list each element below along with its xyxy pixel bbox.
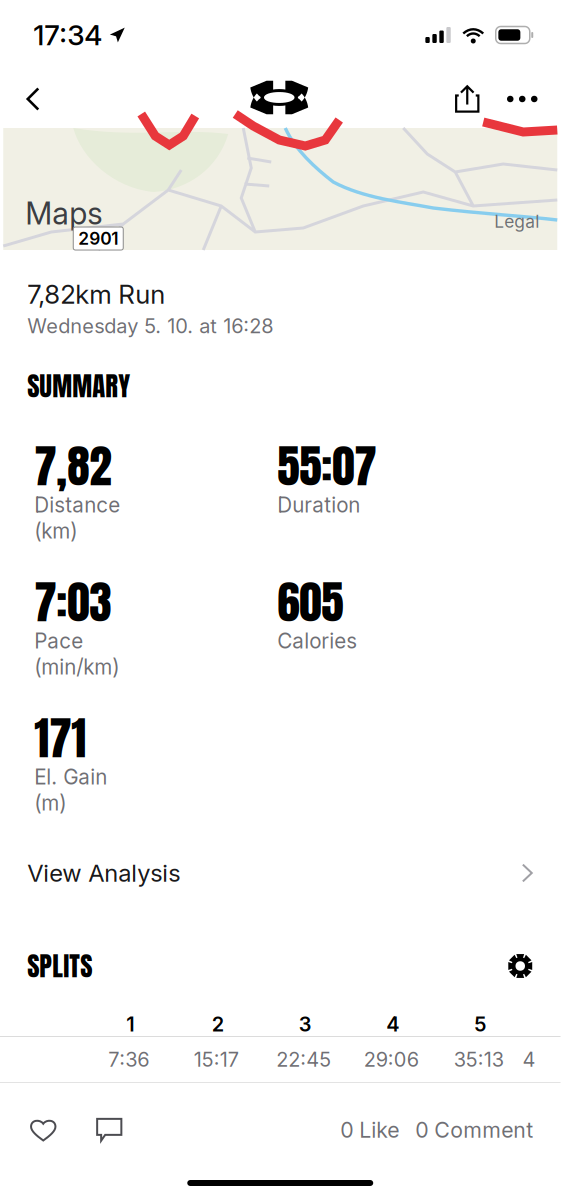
staticText: View Analysis xyxy=(27,858,180,887)
staticText: 29:06 xyxy=(364,1047,419,1072)
staticText: 4 xyxy=(386,1012,399,1036)
staticText: SUMMARY xyxy=(27,366,130,406)
button[interactable]: Comment xyxy=(89,1108,129,1152)
staticText: Duration xyxy=(277,492,360,517)
staticText: 7,82km Run xyxy=(27,278,165,310)
staticText: 0 Like xyxy=(340,1117,399,1143)
staticText: 7,82 xyxy=(34,432,111,500)
button[interactable]: Like xyxy=(23,1108,63,1152)
staticText: 4 xyxy=(522,1047,535,1072)
staticText: 7:03 xyxy=(34,568,111,636)
staticText: 35:13 xyxy=(454,1047,504,1072)
staticText: (min/km) xyxy=(34,654,119,679)
staticText: (m) xyxy=(34,790,66,815)
staticText: 3 xyxy=(299,1012,312,1036)
button[interactable]: Back xyxy=(9,70,57,128)
button[interactable]: View Analysis xyxy=(27,853,533,893)
staticText: 0 Comment xyxy=(415,1117,533,1143)
staticText: 15:17 xyxy=(194,1047,239,1072)
staticText: Legal xyxy=(494,211,539,232)
staticText: 2901 xyxy=(78,228,118,249)
staticText: 55:07 xyxy=(277,432,376,500)
staticText: 171 xyxy=(34,704,86,772)
button[interactable]: Split settings xyxy=(507,953,533,979)
staticText: Wednesday 5. 10. at 16:28 xyxy=(27,314,273,338)
staticText: Maps xyxy=(25,195,102,232)
staticText: 2 xyxy=(212,1012,224,1036)
staticText: 5 xyxy=(474,1012,486,1036)
staticText: (km) xyxy=(34,518,77,543)
staticText: El. Gain xyxy=(34,764,107,789)
staticText: 1 xyxy=(126,1012,134,1036)
staticText: 22:45 xyxy=(276,1047,331,1072)
staticText: 7:36 xyxy=(108,1047,149,1072)
button[interactable]: More options xyxy=(495,70,549,128)
staticText: Pace xyxy=(34,628,83,653)
staticText: 605 xyxy=(277,568,343,636)
staticText: Distance xyxy=(34,492,120,517)
staticText: SPLITS xyxy=(27,946,92,986)
staticText: 17:34 xyxy=(33,18,102,52)
button[interactable]: Share xyxy=(439,70,495,128)
staticText: Calories xyxy=(277,628,357,653)
